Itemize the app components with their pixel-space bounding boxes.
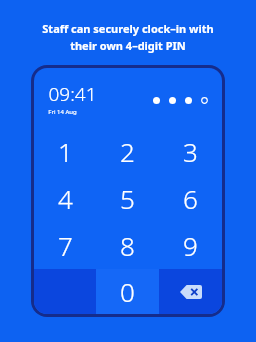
staticText: Staff can securely clock–in with (42, 21, 214, 36)
button[interactable]: 1 (34, 128, 96, 175)
staticText: 8 (120, 228, 135, 263)
button[interactable]: 9 (159, 222, 222, 269)
button[interactable]: 5 (96, 175, 159, 222)
staticText: their own 4–digit PIN (70, 38, 186, 53)
staticText: 5 (120, 181, 135, 216)
staticText: 6 (183, 181, 198, 216)
staticText: 09:41 (48, 81, 97, 107)
staticText: 4 (58, 181, 73, 216)
button[interactable]: 7 (34, 222, 96, 269)
staticText: Fri 14 Aug (48, 108, 77, 116)
button[interactable]: 4 (34, 175, 96, 222)
button[interactable]: 0 (96, 269, 159, 314)
button[interactable] (34, 269, 96, 314)
staticText: 7 (58, 228, 73, 263)
button[interactable]: Delete (159, 269, 222, 314)
staticText: 3 (183, 134, 198, 169)
button[interactable]: 6 (159, 175, 222, 222)
staticText: 9 (183, 228, 198, 263)
staticText: 0 (120, 274, 135, 309)
button[interactable]: 3 (159, 128, 222, 175)
button[interactable]: 8 (96, 222, 159, 269)
staticText: 1 (58, 134, 73, 169)
button[interactable]: 2 (96, 128, 159, 175)
staticText: 2 (120, 134, 135, 169)
